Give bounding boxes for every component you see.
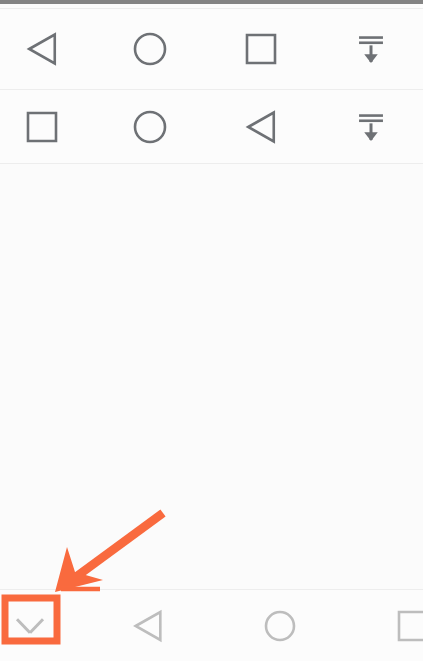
button[interactable]: Home	[126, 25, 174, 73]
button[interactable]: Home	[126, 103, 174, 151]
button[interactable]: Back	[237, 103, 285, 151]
button[interactable]: Hide navigation bar	[347, 103, 395, 151]
button[interactable]: Hide navigation bar	[347, 25, 395, 73]
button[interactable]: Home	[256, 602, 304, 650]
button[interactable]: Back	[124, 602, 172, 650]
button[interactable]: Recents	[237, 25, 285, 73]
button[interactable]: Recents	[18, 103, 66, 151]
button[interactable]: Back	[18, 25, 66, 73]
button[interactable]: Recents	[389, 602, 423, 650]
button[interactable]: Collapse navigation bar	[6, 602, 54, 650]
